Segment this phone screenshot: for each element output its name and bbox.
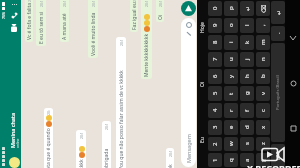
button[interactable]: A mana até bbox=[60, 0, 69, 42]
button[interactable]: 3 bbox=[208, 120, 222, 135]
button[interactable]: ↵ bbox=[240, 1, 254, 16]
button[interactable]: Home bbox=[286, 77, 300, 91]
button[interactable]: 5 bbox=[208, 86, 222, 101]
button[interactable]: h bbox=[240, 69, 254, 84]
staticText: 2 bbox=[211, 142, 219, 146]
staticText: c bbox=[259, 109, 267, 112]
button[interactable]: Faz igual eu bbox=[130, 0, 138, 32]
staticText: 7 bbox=[211, 57, 219, 61]
button[interactable]: Back bbox=[286, 31, 300, 45]
staticText: k bbox=[243, 40, 251, 44]
button[interactable]: q bbox=[224, 153, 238, 167]
button[interactable]: n bbox=[256, 52, 270, 67]
button[interactable]: Ata que é quando bbox=[44, 108, 53, 168]
button[interactable]: Hoje bbox=[197, 0, 207, 56]
button[interactable]: ⇧ bbox=[256, 153, 270, 167]
button[interactable]: 4 bbox=[208, 103, 222, 118]
button[interactable]: Eu bbox=[197, 112, 207, 168]
button[interactable]: Mente kkkkkkkkkk bbox=[141, 0, 152, 79]
button[interactable]: Português (Brasil) bbox=[271, 43, 285, 142]
button[interactable]: ok bbox=[166, 148, 174, 168]
staticText: n bbox=[259, 57, 267, 61]
button[interactable]: j bbox=[240, 52, 254, 67]
button[interactable]: Recent apps bbox=[286, 122, 300, 136]
button[interactable]: ↵ bbox=[271, 1, 285, 24]
staticText: 4 bbox=[211, 108, 219, 112]
staticText: 6 bbox=[211, 74, 219, 78]
button[interactable]: More options bbox=[7, 1, 21, 9]
button[interactable]: t bbox=[224, 86, 238, 101]
button[interactable]: Vc é fofa e falita bbox=[25, 0, 33, 42]
staticText: q bbox=[227, 158, 235, 162]
button[interactable]: 6 bbox=[208, 69, 222, 84]
staticText: t bbox=[227, 92, 235, 95]
button[interactable]: z bbox=[256, 137, 270, 151]
button[interactable]: 7 bbox=[208, 52, 222, 67]
staticText: Faz igual eu bbox=[131, 2, 138, 30]
button[interactable]: Mensagem bbox=[181, 18, 196, 167]
staticText: y bbox=[227, 74, 235, 78]
button[interactable]: 2 bbox=[208, 137, 222, 151]
button[interactable]: c bbox=[256, 103, 270, 118]
button[interactable]: g bbox=[240, 86, 254, 101]
staticText: online bbox=[16, 138, 20, 148]
button[interactable]: obrigada bbox=[102, 121, 111, 168]
staticText: 5 bbox=[211, 91, 219, 95]
button[interactable]: e bbox=[224, 120, 238, 135]
button[interactable]: u bbox=[224, 52, 238, 67]
button[interactable]: Video call bbox=[7, 22, 21, 35]
button[interactable]: Vou que não posso falar assim de vc kkkk… bbox=[116, 37, 126, 168]
staticText: Eu bbox=[199, 137, 206, 143]
button[interactable]: Você é muito linda bbox=[88, 0, 98, 58]
button[interactable]: w bbox=[224, 137, 238, 151]
button[interactable]: ⌫ bbox=[256, 1, 270, 16]
button[interactable]: b bbox=[256, 69, 270, 84]
staticText: g bbox=[243, 91, 251, 95]
staticText: 20:1 bbox=[144, 0, 149, 7]
staticText: b bbox=[259, 74, 267, 78]
button[interactable]: k bbox=[240, 35, 254, 50]
button[interactable]: i bbox=[224, 35, 238, 50]
button[interactable]: E eu tô sem si bbox=[36, 0, 46, 46]
staticText: Menina chata bbox=[9, 112, 16, 148]
button[interactable]: 1 bbox=[208, 153, 222, 167]
button[interactable]: Oi bbox=[197, 56, 207, 112]
button[interactable]: o bbox=[224, 18, 238, 33]
button[interactable]: s bbox=[240, 137, 254, 151]
staticText: w bbox=[227, 141, 235, 146]
staticText: 1 bbox=[211, 158, 219, 162]
button[interactable]: . bbox=[271, 26, 285, 41]
button[interactable]: m bbox=[256, 35, 270, 50]
staticText: !#1 bbox=[274, 151, 282, 160]
button[interactable]: !#1 bbox=[271, 144, 285, 167]
staticText: 8 bbox=[211, 40, 219, 44]
button[interactable]: v bbox=[256, 86, 270, 101]
button[interactable]: f bbox=[240, 103, 254, 118]
button[interactable]: Contact photo bbox=[9, 157, 20, 168]
staticText: h bbox=[243, 74, 251, 78]
staticText: d bbox=[243, 125, 251, 129]
button[interactable]: kkkk bbox=[76, 130, 86, 168]
staticText: f bbox=[243, 109, 251, 112]
staticText: 20:1 bbox=[132, 0, 137, 2]
staticText: s bbox=[243, 142, 251, 145]
button[interactable]: r bbox=[224, 103, 238, 118]
button[interactable]: , bbox=[256, 18, 270, 33]
button[interactable]: a bbox=[240, 153, 254, 167]
button[interactable]: y bbox=[224, 69, 238, 84]
staticText: ↵ bbox=[244, 5, 251, 11]
button[interactable]: Send bbox=[181, 1, 196, 16]
staticText: Oi bbox=[157, 14, 164, 20]
button[interactable]: p bbox=[224, 1, 238, 16]
button[interactable]: 0 bbox=[208, 1, 222, 16]
button[interactable]: 8 bbox=[208, 35, 222, 50]
button[interactable]: x bbox=[256, 120, 270, 135]
staticText: e bbox=[227, 125, 235, 129]
staticText: 20:1 bbox=[62, 0, 67, 7]
button[interactable]: l bbox=[240, 18, 254, 33]
button[interactable]: Voice call bbox=[7, 9, 21, 22]
button[interactable]: Oi bbox=[156, 0, 164, 22]
staticText: v bbox=[259, 91, 267, 95]
button[interactable]: d bbox=[240, 120, 254, 135]
button[interactable]: 9 bbox=[208, 18, 222, 33]
